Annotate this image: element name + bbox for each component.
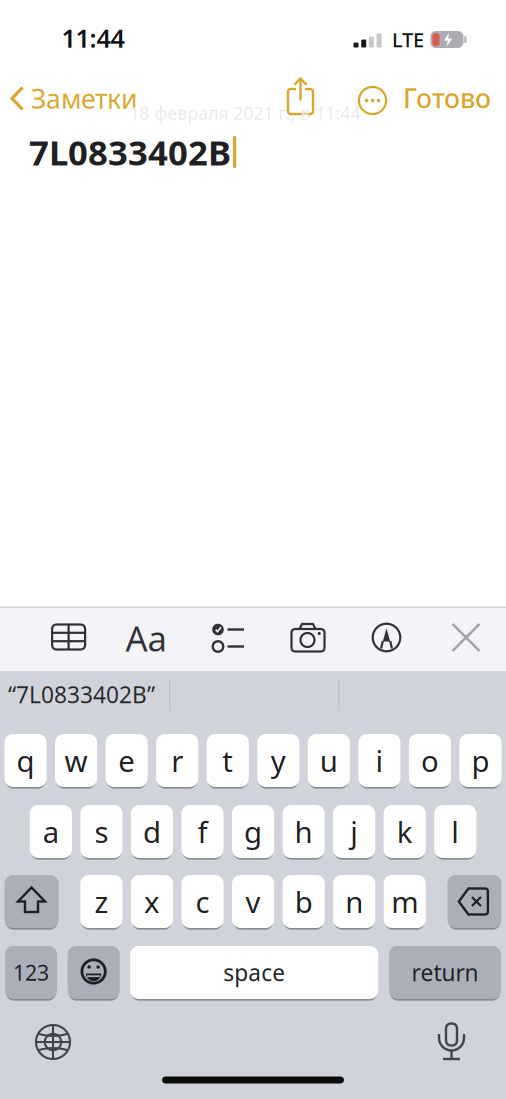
button[interactable]: Camera <box>286 619 330 655</box>
button[interactable]: z <box>80 875 122 928</box>
staticText: l <box>451 812 459 851</box>
button[interactable]: w <box>55 734 97 787</box>
button[interactable]: Готово <box>403 80 491 116</box>
button[interactable]: g <box>232 805 274 858</box>
button[interactable]: Format <box>125 615 166 661</box>
button[interactable]: Table <box>47 619 91 655</box>
button[interactable]: Emoji <box>68 946 120 999</box>
button[interactable]: v <box>232 875 274 928</box>
button[interactable]: e <box>106 734 148 787</box>
button[interactable]: Checklist <box>209 620 249 656</box>
button[interactable]: x <box>131 875 173 928</box>
staticText: return <box>411 957 478 987</box>
staticText: o <box>421 741 439 780</box>
staticText: p <box>471 741 489 780</box>
staticText: Заметки <box>31 81 138 116</box>
button[interactable]: Shift <box>4 875 59 928</box>
staticText: g <box>244 812 262 851</box>
button[interactable]: return <box>389 946 501 999</box>
button[interactable]: m <box>384 875 426 928</box>
staticText: m <box>391 882 418 921</box>
button[interactable]: q <box>4 734 47 787</box>
staticText: i <box>375 741 383 780</box>
staticText: q <box>17 741 35 780</box>
staticText: Готово <box>403 80 491 116</box>
button[interactable]: 123 <box>5 946 57 999</box>
staticText: 18 февраля 2021 г., в 11:44 <box>129 101 360 124</box>
staticText: LTE <box>392 26 424 53</box>
staticText: “7L0833402B” <box>8 679 155 709</box>
staticText: 11:44 <box>61 21 124 55</box>
button[interactable]: h <box>283 805 325 858</box>
button[interactable]: c <box>181 875 224 928</box>
button[interactable]: u <box>308 734 350 787</box>
button[interactable]: f <box>181 805 223 858</box>
staticText: k <box>397 812 413 851</box>
button[interactable]: i <box>358 734 400 787</box>
button[interactable]: l <box>434 805 476 858</box>
button[interactable]: Markup <box>368 619 404 655</box>
button[interactable]: j <box>333 805 375 858</box>
staticText: v <box>246 882 261 921</box>
button[interactable]: y <box>257 734 299 787</box>
button[interactable]: b <box>283 875 325 928</box>
staticText: s <box>94 812 108 851</box>
button[interactable]: d <box>131 805 173 858</box>
staticText: u <box>320 741 338 780</box>
staticText: 7L0833402B <box>29 129 231 175</box>
button[interactable]: a <box>30 805 72 858</box>
button[interactable]: Dismiss keyboard <box>451 622 481 652</box>
button[interactable]: Delete <box>447 875 501 928</box>
button[interactable]: Dictation <box>433 1017 469 1067</box>
staticText: d <box>143 812 161 851</box>
staticText: c <box>196 882 210 921</box>
button[interactable]: t <box>207 734 249 787</box>
staticText: n <box>345 882 363 921</box>
staticText: 123 <box>13 958 49 987</box>
button[interactable]: “7L0833402B” <box>8 672 208 716</box>
button[interactable]: p <box>459 734 501 787</box>
staticText: j <box>350 812 358 851</box>
staticText: Aa <box>125 615 166 661</box>
button[interactable]: Share <box>283 76 317 116</box>
staticText: h <box>295 812 313 851</box>
button[interactable]: Next keyboard <box>33 1022 73 1062</box>
staticText: y <box>271 741 286 780</box>
staticText: w <box>65 741 88 780</box>
button[interactable]: space <box>130 946 378 999</box>
button[interactable]: r <box>156 734 198 787</box>
staticText: z <box>94 882 108 921</box>
staticText: b <box>295 882 313 921</box>
staticText: e <box>118 741 135 780</box>
button[interactable]: k <box>384 805 426 858</box>
button[interactable]: s <box>80 805 122 858</box>
button[interactable]: More <box>356 84 388 116</box>
button[interactable]: n <box>333 875 375 928</box>
staticText: f <box>197 812 207 851</box>
button[interactable]: o <box>409 734 451 787</box>
staticText: t <box>222 741 233 780</box>
staticText: space <box>223 957 285 987</box>
staticText: r <box>171 741 183 780</box>
staticText: a <box>43 812 59 851</box>
button[interactable]: Заметки <box>10 76 170 120</box>
staticText: x <box>144 882 160 921</box>
